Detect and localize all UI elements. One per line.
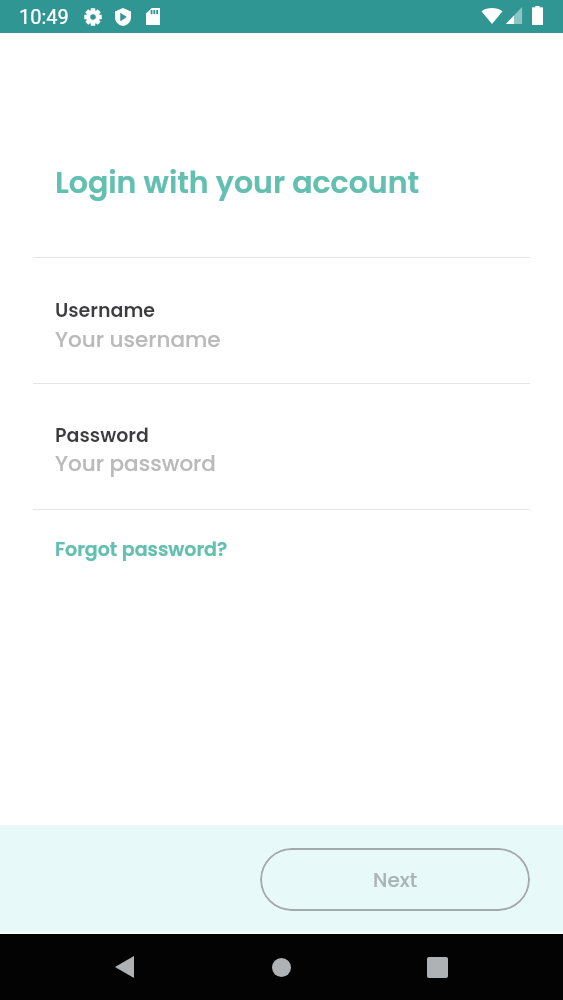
button[interactable]: Back bbox=[93, 941, 155, 993]
staticText: Your password bbox=[55, 448, 216, 478]
button[interactable]: Recent apps bbox=[406, 941, 468, 993]
staticText: Login with your account bbox=[55, 162, 420, 204]
button[interactable]: Home bbox=[250, 941, 312, 993]
staticText: Your username bbox=[55, 324, 221, 354]
button[interactable]: Forgot password? bbox=[55, 536, 228, 563]
button[interactable]: Password bbox=[33, 384, 530, 509]
staticText: Forgot password? bbox=[55, 536, 228, 563]
staticText: Username bbox=[55, 297, 156, 324]
staticText: Next bbox=[373, 866, 418, 894]
button[interactable]: Next bbox=[260, 848, 530, 911]
staticText: Password bbox=[55, 422, 149, 449]
staticText: 10:49 bbox=[19, 5, 69, 28]
button[interactable]: Username bbox=[33, 258, 530, 383]
